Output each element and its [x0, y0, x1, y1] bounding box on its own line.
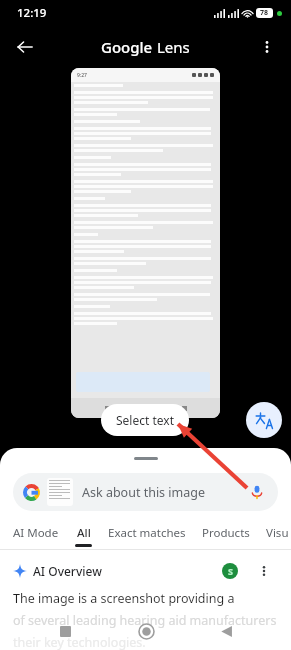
staticText: Select text [116, 412, 174, 428]
staticText: Visual ma [266, 525, 291, 541]
staticText: 12:19 [17, 5, 47, 21]
button[interactable]: Voice search [246, 481, 268, 503]
staticText: Google [101, 37, 157, 57]
button[interactable]: Captured screenshot [71, 68, 220, 418]
staticText: their key technologies. [13, 634, 146, 650]
staticText: AI Overview [33, 563, 102, 579]
button[interactable]: Ask about this image [13, 473, 278, 511]
staticText: S [228, 565, 233, 577]
staticText: Products [202, 525, 250, 541]
button[interactable]: More options [251, 31, 283, 63]
button[interactable]: Products [202, 525, 250, 547]
button[interactable]: All [75, 525, 92, 547]
button[interactable]: Back [211, 616, 241, 646]
staticText: Ask about this image [82, 484, 246, 501]
button[interactable]: More options [254, 561, 274, 581]
button[interactable]: Select text [101, 404, 189, 436]
button[interactable]: AI Mode [13, 525, 59, 547]
staticText: Lens [157, 37, 190, 57]
staticText: The image is a screenshot providing a co… [13, 590, 278, 607]
button[interactable]: Back [8, 30, 42, 64]
button[interactable]: Home [131, 616, 161, 646]
button[interactable]: Translate [246, 402, 282, 438]
staticText: All [77, 525, 91, 541]
button[interactable]: Visual ma [266, 525, 291, 547]
staticText: AI Mode [13, 525, 59, 541]
button[interactable]: Source [222, 563, 238, 579]
staticText: of several leading hearing aid manufactu… [13, 612, 278, 629]
staticText: 9:27 [77, 72, 87, 79]
staticText: Exact matches [108, 525, 186, 541]
button[interactable]: Recent apps [50, 616, 80, 646]
button[interactable]: Exact matches [108, 525, 186, 547]
staticText: 78 [260, 8, 269, 18]
